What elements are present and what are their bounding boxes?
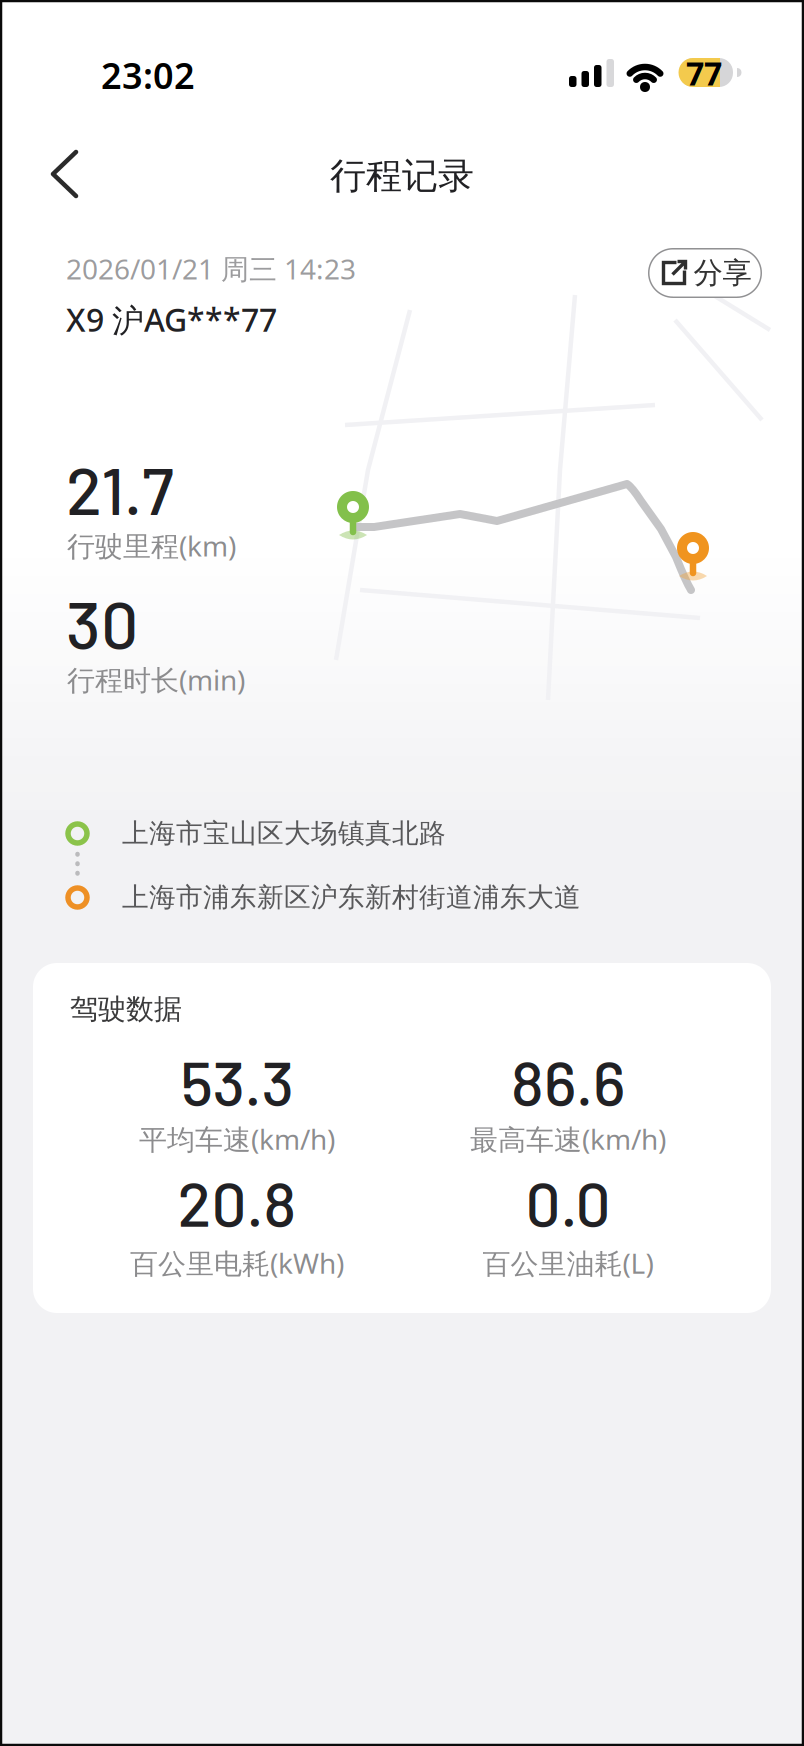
staticText: 53.3: [180, 1044, 293, 1118]
staticText: 行驶里程(km): [67, 527, 236, 564]
button[interactable]: 分享: [648, 248, 762, 298]
staticText: 2026/01/21 周三 14:23: [66, 250, 356, 287]
staticText: 行程记录: [330, 154, 474, 198]
staticText: 20.8: [177, 1165, 296, 1239]
staticText: 上海市宝山区大场镇真北路: [122, 817, 446, 850]
staticText: 分享: [693, 255, 751, 291]
staticText: 30: [66, 583, 138, 662]
staticText: 最高车速(km/h): [470, 1120, 666, 1158]
staticText: X9 沪AG***77: [66, 298, 277, 341]
staticText: 行程时长(min): [67, 661, 245, 698]
staticText: 百公里电耗(kWh): [130, 1244, 344, 1282]
staticText: 上海市浦东新区沪东新村街道浦东大道: [122, 881, 581, 914]
button[interactable]: Back: [20, 110, 130, 240]
staticText: 百公里油耗(L): [482, 1244, 653, 1282]
staticText: 77: [686, 52, 722, 94]
staticText: 平均车速(km/h): [139, 1120, 335, 1158]
staticText: 23:02: [101, 51, 195, 99]
staticText: 驾驶数据: [70, 992, 182, 1026]
staticText: 21.7: [66, 449, 174, 528]
staticText: 86.6: [511, 1044, 625, 1118]
staticText: 0.0: [525, 1165, 610, 1239]
